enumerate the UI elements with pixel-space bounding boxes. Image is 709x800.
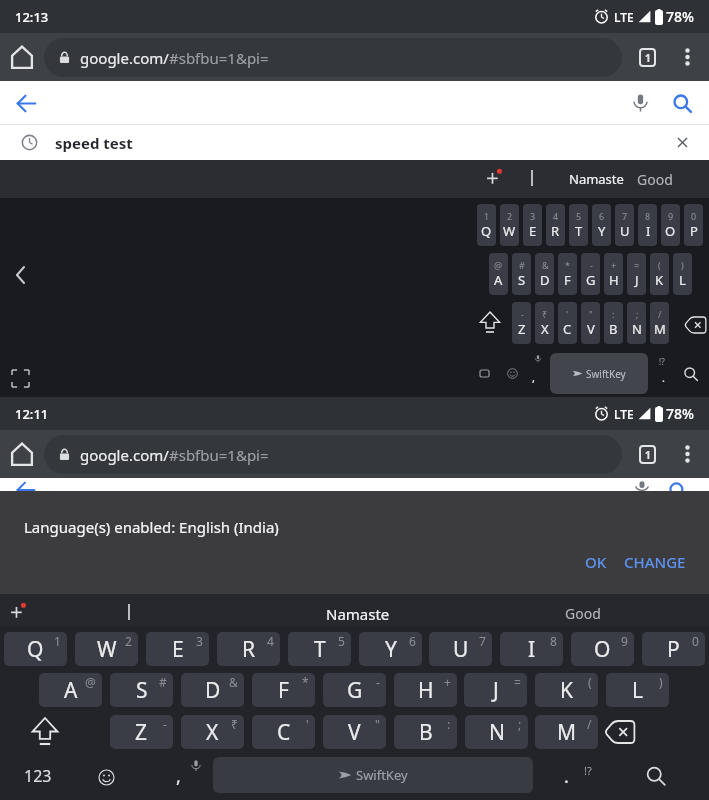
staticText: 123 xyxy=(24,765,52,787)
button[interactable]: : xyxy=(604,302,623,344)
button[interactable]: 4 xyxy=(546,204,565,246)
button[interactable]: S xyxy=(110,673,173,707)
button[interactable] xyxy=(636,758,676,794)
staticText: / xyxy=(587,716,592,732)
button[interactable]: W xyxy=(75,632,138,666)
button[interactable] xyxy=(478,306,502,340)
button[interactable]: 3 xyxy=(523,204,542,246)
button[interactable]: 7 xyxy=(615,204,634,246)
button[interactable]: Q xyxy=(4,632,67,666)
button[interactable] xyxy=(627,90,653,116)
button[interactable]: ) xyxy=(673,253,692,295)
button[interactable]: - xyxy=(581,253,600,295)
button[interactable]: D xyxy=(181,673,244,707)
button[interactable]: K xyxy=(535,673,598,707)
button[interactable]: M xyxy=(535,715,598,749)
button[interactable]: I xyxy=(500,632,563,666)
button[interactable]: B xyxy=(394,715,457,749)
button[interactable] xyxy=(11,369,29,387)
button[interactable]: 6 xyxy=(592,204,611,246)
button[interactable]: X xyxy=(181,715,244,749)
button[interactable] xyxy=(0,33,44,81)
staticText: D xyxy=(205,676,221,705)
button[interactable]: T xyxy=(288,632,351,666)
staticText: #sbfbu=1&pi= xyxy=(169,48,269,68)
button[interactable]: N xyxy=(465,715,528,749)
button[interactable]: " xyxy=(581,302,600,344)
button[interactable]: L xyxy=(606,673,669,707)
button[interactable] xyxy=(88,761,124,793)
button[interactable]: ₹ xyxy=(535,302,554,344)
button[interactable]: CHANGE xyxy=(624,552,686,572)
button[interactable] xyxy=(683,314,708,336)
staticText: , xyxy=(532,370,535,385)
staticText: 0 xyxy=(692,633,699,649)
button[interactable]: ; xyxy=(627,302,646,344)
staticText: " xyxy=(375,716,380,732)
button[interactable]: / xyxy=(650,302,669,344)
staticText: X xyxy=(541,320,549,338)
button[interactable]: + xyxy=(604,253,623,295)
button[interactable]: 2 xyxy=(500,204,519,246)
button[interactable]: U xyxy=(429,632,492,666)
button[interactable] xyxy=(682,365,700,383)
button[interactable]: G xyxy=(323,673,386,707)
button[interactable]: Y xyxy=(359,632,422,666)
button[interactable]: J xyxy=(464,673,527,707)
button[interactable] xyxy=(20,715,70,749)
button[interactable]: P xyxy=(642,632,705,666)
button[interactable]: google.com/ xyxy=(44,435,622,474)
button[interactable]: , xyxy=(160,758,196,794)
button[interactable]: speed test xyxy=(21,125,689,160)
button[interactable]: 1 xyxy=(477,204,496,246)
staticText: C xyxy=(277,718,291,747)
button[interactable]: 5 xyxy=(569,204,588,246)
staticText: C xyxy=(563,320,572,338)
button[interactable] xyxy=(10,264,32,286)
button[interactable] xyxy=(672,430,702,478)
button[interactable]: SwiftKey xyxy=(213,757,533,793)
staticText: M xyxy=(557,718,577,747)
button[interactable]: google.com/ xyxy=(44,38,622,77)
staticText: Namaste xyxy=(569,170,624,188)
button[interactable] xyxy=(14,91,38,115)
button[interactable] xyxy=(598,715,642,749)
button[interactable]: O xyxy=(571,632,634,666)
button[interactable]: . xyxy=(548,758,584,794)
button[interactable]: * xyxy=(558,253,577,295)
button[interactable]: H xyxy=(394,673,457,707)
button[interactable]: E xyxy=(146,632,209,666)
button[interactable]: 1 xyxy=(622,430,672,478)
button[interactable] xyxy=(5,597,29,621)
button[interactable]: V xyxy=(323,715,386,749)
button[interactable]: 8 xyxy=(638,204,657,246)
staticText: 3 xyxy=(196,633,203,649)
button[interactable]: ' xyxy=(558,302,577,344)
button[interactable]: 0 xyxy=(684,204,703,246)
button[interactable]: ( xyxy=(650,253,669,295)
staticText: R xyxy=(551,222,560,240)
button[interactable]: C xyxy=(252,715,315,749)
button[interactable] xyxy=(672,33,702,81)
staticText: = xyxy=(634,259,640,271)
button[interactable]: A xyxy=(39,673,102,707)
button[interactable]: 123 xyxy=(14,758,62,794)
button[interactable]: Z xyxy=(110,715,173,749)
button[interactable]: OK xyxy=(585,552,607,572)
button[interactable]: # xyxy=(512,253,531,295)
button[interactable]: @ xyxy=(489,253,508,295)
button[interactable] xyxy=(0,430,44,478)
button[interactable] xyxy=(669,90,695,116)
button[interactable]: 9 xyxy=(661,204,680,246)
staticText: Y xyxy=(598,222,606,240)
button[interactable]: F xyxy=(252,673,315,707)
button[interactable]: R xyxy=(217,632,280,666)
button[interactable]: - xyxy=(512,302,531,344)
button[interactable]: 1 xyxy=(622,33,672,81)
button[interactable]: SwiftKey xyxy=(550,353,648,394)
button[interactable]: = xyxy=(627,253,646,295)
staticText: X xyxy=(206,718,219,747)
button[interactable]: & xyxy=(535,253,554,295)
button[interactable] xyxy=(506,367,518,379)
button[interactable] xyxy=(481,163,505,187)
